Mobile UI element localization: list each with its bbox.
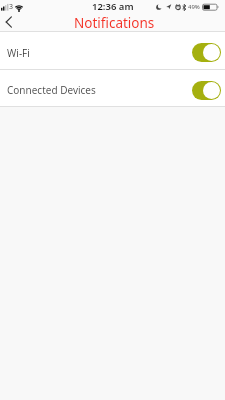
- staticText: 12:36 am: [92, 0, 134, 13]
- button[interactable]: [192, 81, 221, 100]
- button[interactable]: [2, 15, 16, 29]
- staticText: 3: [9, 2, 14, 12]
- staticText: Connected Devices: [7, 83, 96, 97]
- button[interactable]: [192, 43, 221, 62]
- staticText: Notifications: [74, 14, 155, 32]
- staticText: 49%: [188, 3, 200, 11]
- button[interactable]: Wi-Fi: [0, 32, 225, 69]
- staticText: Wi-Fi: [7, 46, 30, 60]
- button[interactable]: Connected Devices: [0, 70, 225, 106]
